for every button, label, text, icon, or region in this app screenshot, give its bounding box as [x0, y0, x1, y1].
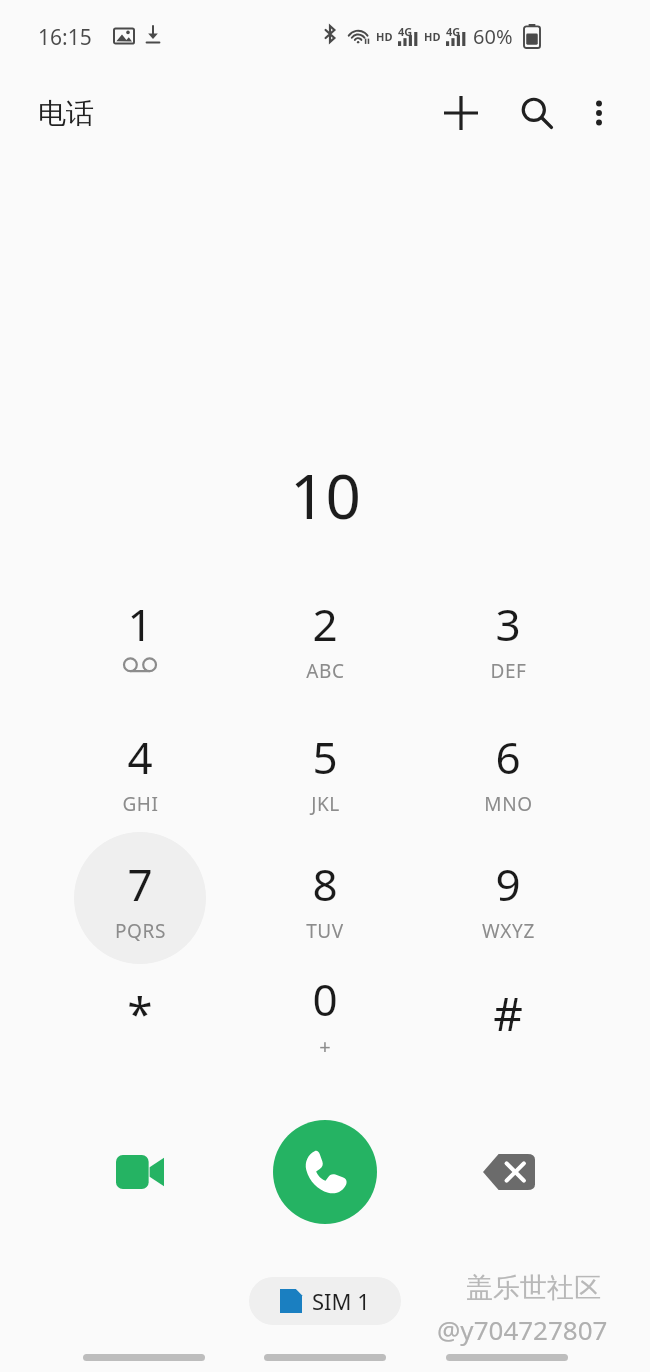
staticText: 8: [312, 854, 338, 914]
staticText: @y704727807: [437, 1312, 608, 1347]
button[interactable]: Key 5: [259, 705, 391, 837]
button[interactable]: Home: [264, 1354, 386, 1361]
button[interactable]: More options: [567, 81, 631, 145]
button[interactable]: Recents: [83, 1354, 205, 1361]
staticText: 电话: [38, 96, 94, 131]
staticText: +: [319, 1033, 331, 1060]
staticText: 3: [495, 594, 521, 654]
staticText: 7: [127, 854, 153, 914]
button[interactable]: Back: [446, 1354, 568, 1361]
staticText: 10: [290, 453, 361, 537]
button[interactable]: Key 8: [259, 832, 391, 964]
button[interactable]: Key 2: [259, 572, 391, 704]
button[interactable]: Search: [505, 81, 569, 145]
staticText: 2: [312, 594, 338, 654]
staticText: #: [493, 982, 523, 1045]
button[interactable]: Key 6: [442, 705, 574, 837]
staticText: 盖乐世社区: [466, 1271, 601, 1305]
button[interactable]: Key 7: [74, 832, 206, 964]
button[interactable]: Key 3: [442, 572, 574, 704]
staticText: WXYZ: [482, 918, 535, 944]
staticText: PQRS: [115, 918, 166, 944]
button[interactable]: Video call: [88, 1120, 192, 1224]
button[interactable]: SIM 1: [249, 1277, 401, 1325]
staticText: 4: [127, 727, 153, 787]
button[interactable]: Call: [273, 1120, 377, 1224]
staticText: 4G: [398, 24, 413, 39]
staticText: JKL: [311, 791, 340, 817]
button[interactable]: Key 9: [442, 832, 574, 964]
staticText: 5: [312, 727, 338, 787]
staticText: 4G: [446, 24, 461, 39]
staticText: GHI: [122, 791, 159, 817]
button[interactable]: Key #: [442, 947, 574, 1079]
staticText: HD: [376, 29, 393, 44]
staticText: 60%: [473, 23, 513, 50]
button[interactable]: Key 0: [259, 947, 391, 1079]
staticText: DEF: [490, 658, 527, 684]
button[interactable]: Key 4: [74, 705, 206, 837]
staticText: 0: [312, 969, 338, 1029]
button[interactable]: Backspace: [457, 1120, 561, 1224]
staticText: 6: [495, 727, 521, 787]
button[interactable]: Add contact: [429, 81, 493, 145]
staticText: ABC: [306, 658, 345, 684]
staticText: MNO: [484, 791, 533, 817]
staticText: 16:15: [38, 23, 92, 52]
staticText: TUV: [306, 918, 344, 944]
button[interactable]: Key *: [74, 947, 206, 1079]
staticText: *: [127, 982, 153, 1045]
staticText: 1: [127, 594, 153, 654]
button[interactable]: Key 1: [74, 572, 206, 704]
staticText: 9: [495, 854, 521, 914]
staticText: SIM 1: [312, 1286, 370, 1316]
staticText: HD: [424, 29, 441, 44]
